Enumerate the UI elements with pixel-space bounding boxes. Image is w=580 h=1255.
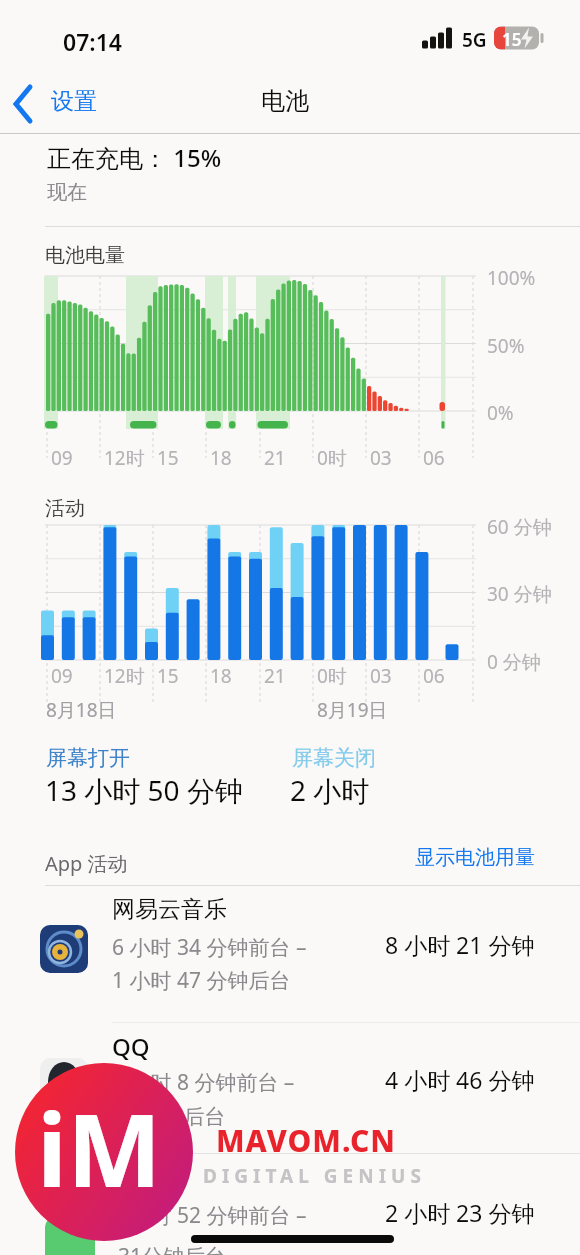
staticText: 15 [157,663,179,689]
staticText: 09 [51,445,73,471]
staticText: 0时 [317,663,347,689]
staticText: 现在 [47,180,87,205]
staticText: 2 小时 [290,771,370,809]
staticText: 21 [264,663,286,689]
staticText: 4 小时 46 分钟 [385,1064,535,1095]
staticText: 30 分钟 [487,581,552,607]
staticText: 03 [370,663,392,689]
staticText: 100% [487,265,536,291]
staticText: 屏幕打开 [46,745,130,771]
staticText: 电池电量 [45,243,125,268]
staticText: 6 小时 34 分钟前台 – [112,933,307,962]
staticText: 18 [210,663,232,689]
staticText: 12时 [104,445,145,471]
staticText: 18 [210,445,232,471]
staticText: 15 [157,445,179,471]
staticText: 21 [264,445,286,471]
staticText: 网易云音乐 [112,895,227,924]
staticText: 活动 [45,496,85,521]
staticText: App 活动 [45,850,128,877]
button[interactable]: 显示电池用量 [375,845,535,875]
staticText: QQ [112,1030,150,1063]
staticText: 09 [51,663,73,689]
staticText: 07:14 [63,26,122,57]
staticText: 正在充电： 15% [47,141,222,174]
staticText: MAVOM.CN [216,1120,396,1161]
staticText: 0 分钟 [487,649,541,675]
staticText: 28 分钟后台 [112,1102,226,1131]
staticText: 06 [423,445,445,471]
staticText: DIGITAL GENIUS [203,1163,426,1189]
staticText: 8月19日 [317,697,388,723]
staticText: 0% [487,400,514,426]
button[interactable] [30,1160,550,1255]
staticText: 屏幕关闭 [292,745,376,771]
staticText: 显示电池用量 [415,845,535,870]
staticText: 12时 [104,663,145,689]
staticText: 60 分钟 [487,514,552,540]
staticText: 2 小时 23 分钟 [385,1197,535,1228]
staticText: 06 [423,663,445,689]
staticText: 8月18日 [46,697,117,723]
staticText: 31分钟后台 [118,1242,227,1255]
staticText: 7 小时 8 分钟前台 – [112,1068,295,1097]
staticText: 8 小时 21 分钟 [385,929,535,960]
staticText: 03 [370,445,392,471]
staticText: iM [37,1080,162,1216]
button[interactable] [30,1025,550,1150]
button[interactable] [30,890,550,1015]
staticText: 电池 [261,86,309,116]
staticText: 0时 [317,445,347,471]
staticText: 50% [487,333,525,359]
staticText: 15 [502,28,522,51]
staticText: 13 小时 50 分钟 [45,771,243,809]
staticText: 设置 [51,87,97,116]
button[interactable]: 设置 [8,80,128,126]
staticText: 1 小时 52 分钟前台 – [112,1201,307,1230]
staticText: 5G [462,27,487,53]
staticText: 1 小时 47 分钟后台 [112,966,291,995]
